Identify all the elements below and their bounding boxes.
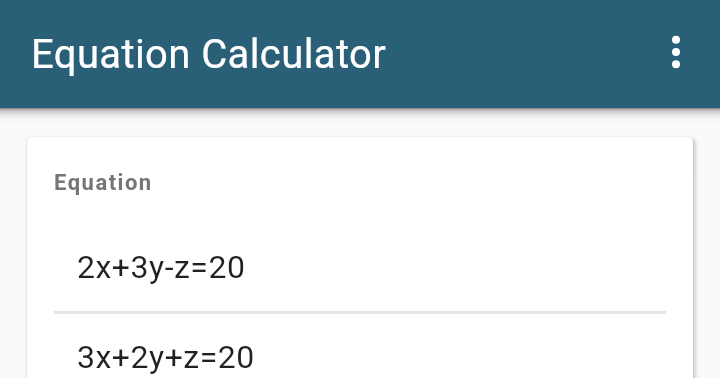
staticText: 2x+3y-z=20	[77, 248, 246, 286]
button[interactable]: More options	[652, 28, 700, 76]
staticText: 3x+2y+z=20	[77, 338, 255, 376]
button[interactable]: 3x+2y+z=20	[27, 314, 693, 378]
staticText: Equation Calculator	[31, 31, 387, 78]
staticText: Equation	[54, 170, 153, 196]
button[interactable]: 2x+3y-z=20	[27, 237, 693, 311]
